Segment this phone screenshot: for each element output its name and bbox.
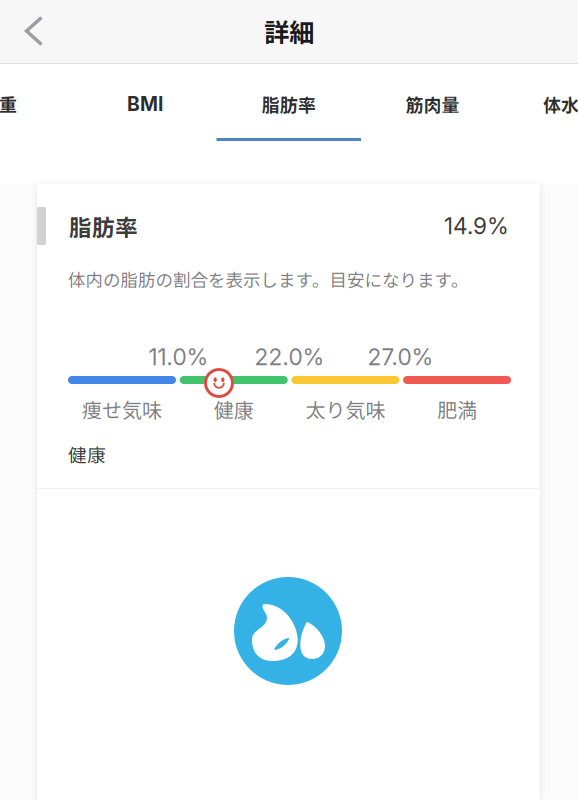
- button[interactable]: Back: [6, 0, 62, 62]
- staticText: 痩せ気味: [82, 394, 162, 423]
- staticText: 体水: [543, 91, 578, 117]
- staticText: 22.0%: [254, 343, 324, 371]
- button[interactable]: 脂肪率: [217, 64, 361, 184]
- staticText: 体内の脂肪の割合を表示します。目安になります。: [68, 266, 468, 292]
- staticText: 14.9%: [444, 212, 509, 240]
- staticText: 脂肪率: [262, 91, 316, 117]
- staticText: 重: [0, 91, 17, 117]
- staticText: 肥満: [437, 394, 477, 423]
- staticText: 健康: [214, 394, 254, 423]
- staticText: 11.0%: [148, 343, 208, 371]
- button[interactable]: BMI: [73, 64, 217, 184]
- button[interactable]: 体水: [504, 64, 578, 184]
- button[interactable]: 重: [0, 64, 16, 184]
- button[interactable]: 筋肉量: [361, 64, 504, 184]
- staticText: 太り気味: [305, 394, 385, 423]
- staticText: 27.0%: [367, 343, 433, 371]
- staticText: 筋肉量: [405, 91, 459, 117]
- staticText: BMI: [127, 92, 163, 116]
- staticText: 健康: [68, 440, 106, 467]
- staticText: 詳細: [264, 13, 314, 49]
- staticText: 脂肪率: [69, 210, 138, 242]
